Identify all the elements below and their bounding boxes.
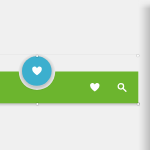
button[interactable]: Favorites [83,76,107,100]
button[interactable]: Favorite [22,54,52,84]
button[interactable]: Search [109,76,133,100]
